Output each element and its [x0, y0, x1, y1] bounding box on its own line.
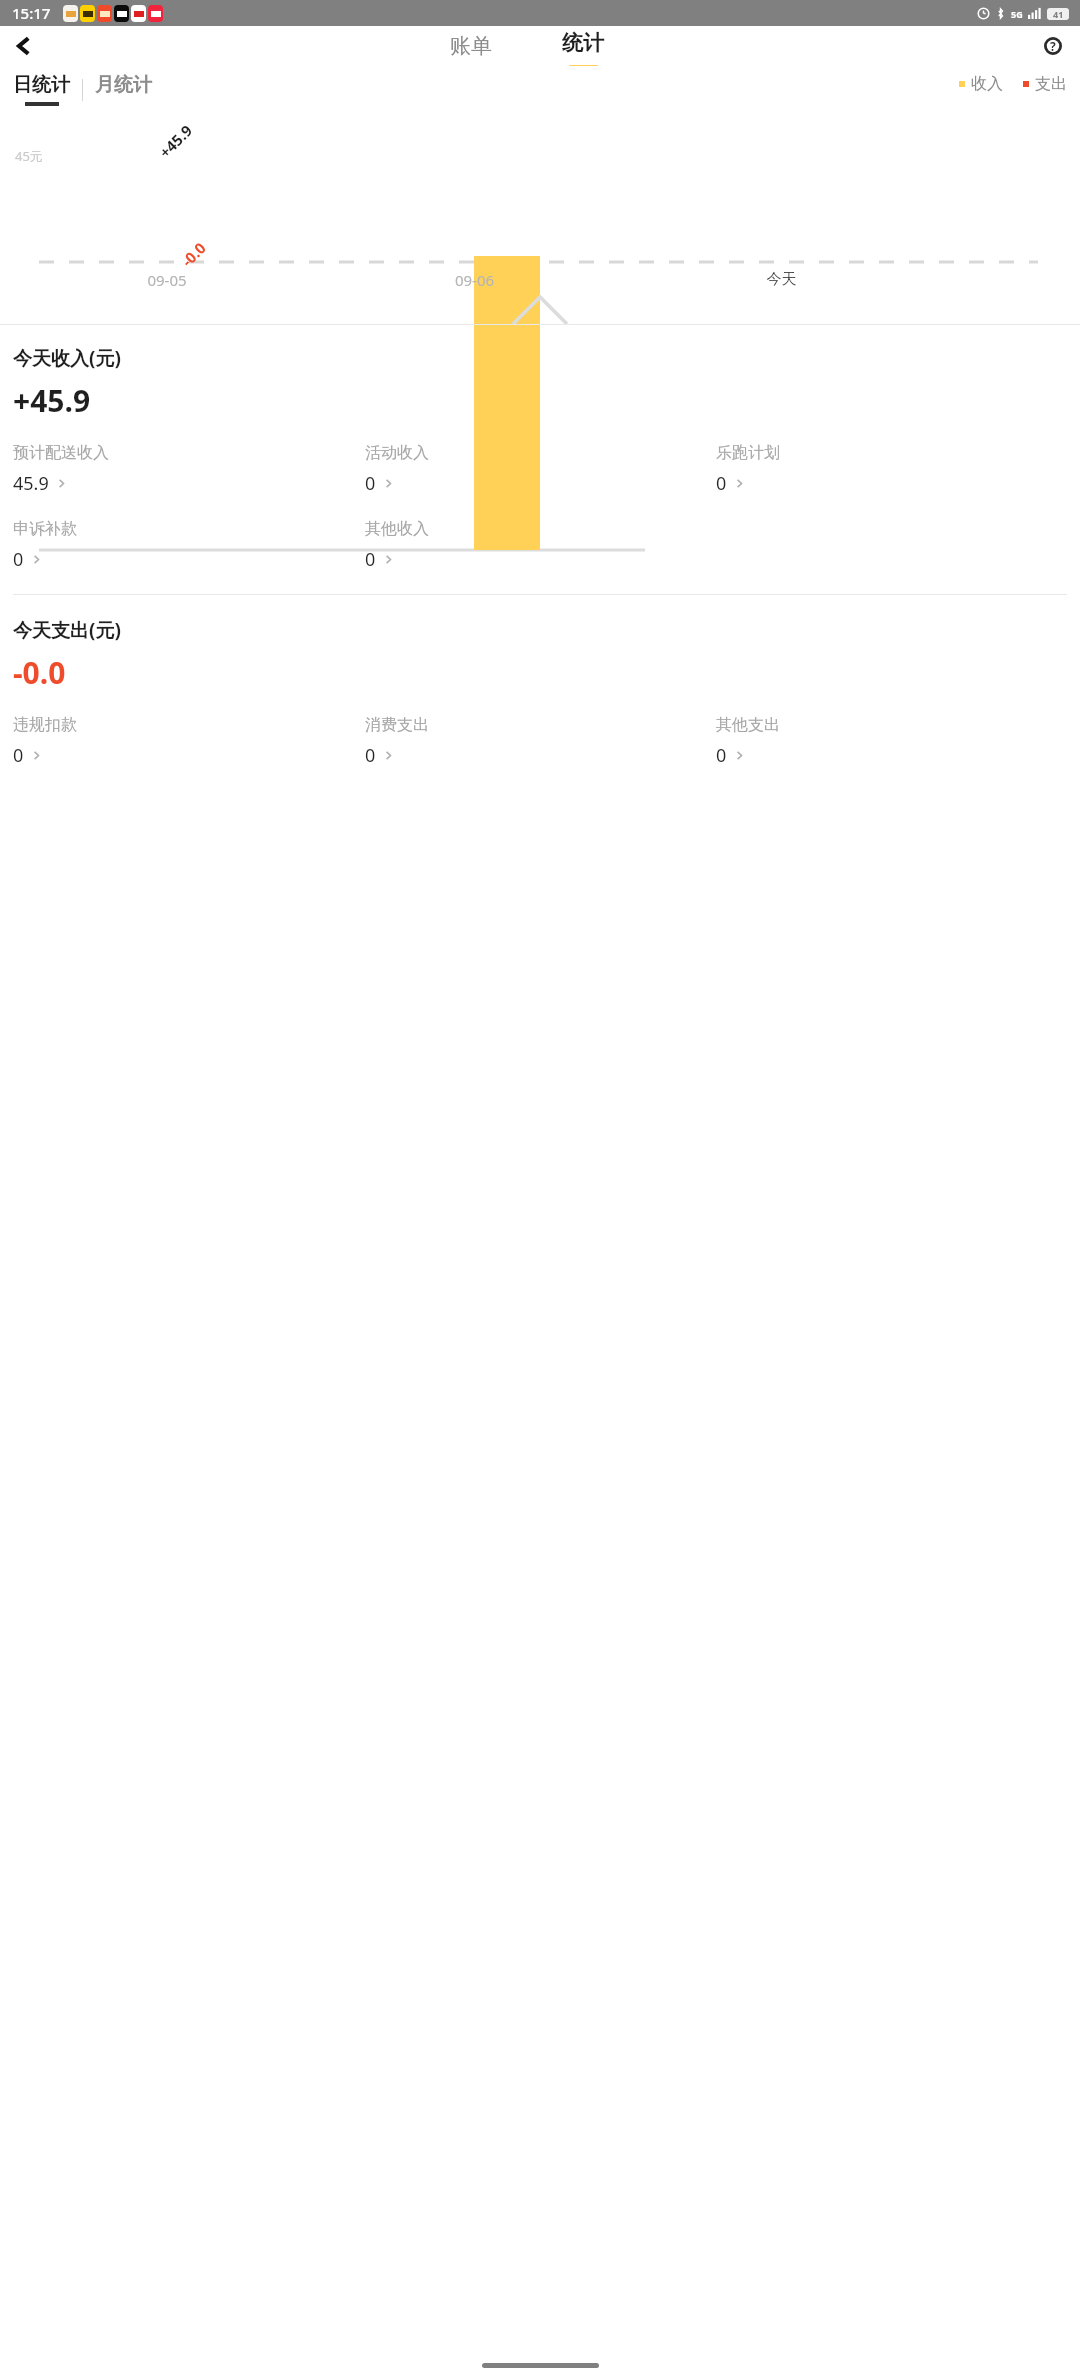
- staticText: 乐跑计划: [716, 443, 780, 463]
- button[interactable]: Help: [1036, 29, 1070, 63]
- button[interactable]: 其他支出: [716, 715, 1067, 768]
- button[interactable]: 月统计: [95, 78, 152, 102]
- staticText: ?: [1050, 38, 1056, 54]
- staticText: 09-05: [13, 270, 321, 290]
- staticText: 0: [365, 547, 376, 572]
- staticText: -0.0: [177, 237, 210, 271]
- staticText: +45.9: [155, 120, 196, 162]
- staticText: 0: [365, 743, 376, 768]
- button[interactable]: 消费支出: [365, 715, 716, 768]
- staticText: 活动收入: [365, 443, 429, 463]
- button[interactable]: 预计配送收入: [13, 443, 365, 496]
- staticText: 09-06: [321, 270, 628, 290]
- staticText: 0: [716, 471, 727, 496]
- staticText: 月统计: [95, 73, 152, 97]
- staticText: 日统计: [13, 73, 70, 97]
- staticText: 其他收入: [365, 519, 429, 539]
- staticText: 统计: [562, 30, 604, 56]
- staticText: 0: [13, 743, 24, 768]
- staticText: +45.9: [13, 380, 91, 421]
- staticText: 0: [365, 471, 376, 496]
- button[interactable]: 乐跑计划: [716, 443, 1067, 496]
- staticText: 41: [1053, 8, 1064, 20]
- staticText: 申诉补款: [13, 519, 77, 539]
- staticText: 其他支出: [716, 715, 780, 735]
- staticText: 15:17: [12, 3, 51, 23]
- staticText: 5G: [1011, 8, 1023, 20]
- button[interactable]: Back: [8, 31, 38, 61]
- staticText: 0: [13, 547, 24, 572]
- staticText: 今天收入(元): [13, 345, 121, 371]
- staticText: 0: [716, 743, 727, 768]
- button[interactable]: 违规扣款: [13, 715, 365, 768]
- staticText: -0.0: [13, 652, 66, 693]
- button[interactable]: 活动收入: [365, 443, 716, 496]
- staticText: 预计配送收入: [13, 443, 109, 463]
- staticText: 支出: [1035, 74, 1067, 94]
- staticText: 45元: [15, 147, 43, 165]
- staticText: 账单: [450, 33, 492, 59]
- staticText: 今天支出(元): [13, 617, 121, 643]
- button[interactable]: 账单: [434, 29, 508, 63]
- staticText: 今天: [628, 270, 935, 289]
- button[interactable]: 日统计: [13, 73, 70, 106]
- staticText: 45.9: [13, 471, 49, 496]
- staticText: 违规扣款: [13, 715, 77, 735]
- button[interactable]: 其他收入: [365, 519, 716, 572]
- button[interactable]: 统计: [546, 26, 620, 66]
- button[interactable]: 申诉补款: [13, 519, 365, 572]
- staticText: 收入: [971, 74, 1003, 94]
- staticText: 消费支出: [365, 715, 429, 735]
